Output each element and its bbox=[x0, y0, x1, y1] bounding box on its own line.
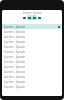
button[interactable]: Lorem - Ipsum bbox=[2, 84, 62, 89]
staticText: Lorem - Ipsum bbox=[4, 85, 26, 89]
button[interactable]: Lorem - Ipsum bbox=[2, 79, 62, 84]
staticText: Lorem - Ipsum bbox=[4, 35, 26, 39]
button[interactable]: Lorem - Ipsum bbox=[2, 74, 62, 79]
button[interactable]: Action 3 bbox=[32, 15, 37, 20]
button[interactable]: Lorem - Ipsum bbox=[2, 34, 62, 39]
staticText: Lorem - Ipsum bbox=[4, 60, 26, 64]
button[interactable]: Lorem - Ipsum bbox=[2, 39, 62, 44]
staticText: Lorem - Ipsum bbox=[4, 70, 26, 74]
staticText: Lorem - Ipsum bbox=[4, 40, 26, 44]
button[interactable]: Lorem - Ipsum bbox=[2, 29, 62, 34]
staticText: Lorem - Ipsum bbox=[4, 25, 26, 29]
staticText: Lorem - Ipsum bbox=[4, 65, 26, 69]
button[interactable]: Lorem - Ipsum bbox=[2, 64, 62, 69]
button[interactable]: Action 4 bbox=[37, 15, 42, 20]
button[interactable]: Action 2 bbox=[27, 15, 32, 20]
button[interactable]: Lorem - Ipsum bbox=[2, 59, 62, 64]
button[interactable]: Action 1 bbox=[22, 15, 27, 20]
button[interactable]: Lorem - Ipsum bbox=[2, 54, 62, 59]
button[interactable]: Lorem - Ipsum bbox=[2, 44, 62, 49]
button[interactable]: Lorem - Ipsum bbox=[2, 69, 62, 74]
staticText: Lorem - Ipsum bbox=[4, 45, 26, 49]
button[interactable]: Lorem - Ipsum bbox=[2, 49, 62, 54]
staticText: Lorem - Ipsum bbox=[4, 55, 26, 59]
staticText: Lorem - Ipsum bbox=[4, 50, 26, 54]
button[interactable]: Lorem - Ipsum bbox=[2, 24, 62, 29]
staticText: Lorem - Ipsum bbox=[4, 75, 26, 79]
staticText: Lorem - Ipsum bbox=[4, 80, 26, 84]
staticText: Lorem - Ipsum bbox=[4, 30, 26, 34]
staticText: Lorem Ipsum bbox=[23, 11, 42, 15]
